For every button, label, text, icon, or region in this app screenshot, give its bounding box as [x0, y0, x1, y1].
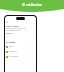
button[interactable]: Mail	[6, 45, 35, 48]
staticText: AI notification	[22, 3, 43, 7]
staticText: consectetur elit	[6, 29, 20, 32]
staticText: Enable	[6, 32, 13, 35]
staticText: Settings	[6, 41, 16, 44]
staticText: Reminders	[9, 55, 19, 58]
button[interactable]: Reminders	[6, 55, 35, 58]
staticText: Lorem ipsum dolor sit	[6, 27, 26, 30]
staticText: Smart alerts	[6, 25, 19, 28]
button[interactable]: Enable	[6, 32, 13, 35]
button[interactable]: Calendar	[6, 50, 35, 53]
staticText: Calendar	[9, 50, 17, 53]
button[interactable]: AI notification	[0, 0, 64, 10]
staticText: Mail	[9, 45, 13, 48]
